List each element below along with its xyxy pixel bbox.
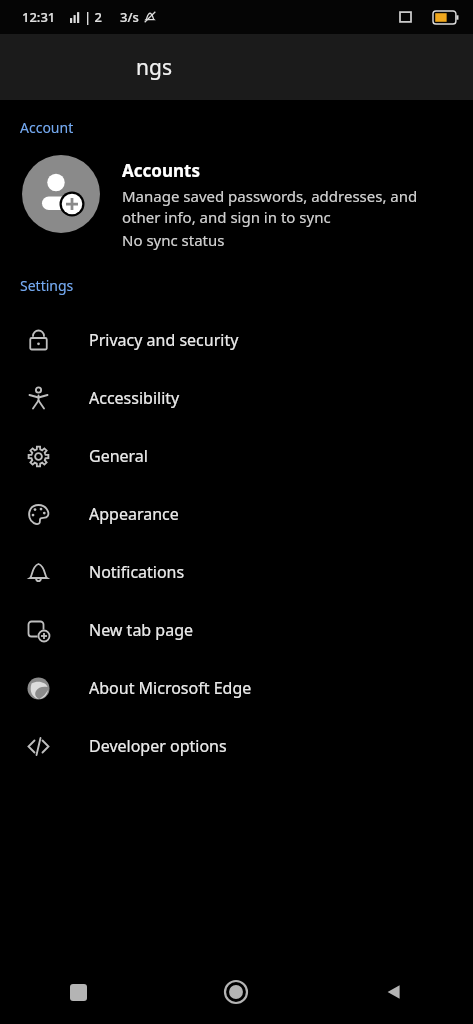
staticText: Developer options — [89, 735, 227, 757]
button[interactable]: Accessibility — [0, 369, 473, 427]
staticText: Manage saved passwords, addresses, and o… — [122, 186, 418, 228]
staticText: Accessibility — [89, 387, 180, 409]
staticText: Privacy and security — [89, 329, 239, 351]
staticText: 3/s — [120, 8, 139, 26]
staticText: About Microsoft Edge — [89, 677, 252, 699]
button[interactable]: New tab page — [0, 601, 473, 659]
button[interactable]: Notifications — [0, 543, 473, 601]
button[interactable]: Recent apps — [0, 960, 157, 1024]
staticText: Notifications — [89, 561, 185, 583]
staticText: No sync status — [122, 230, 225, 250]
button[interactable]: Back — [315, 960, 473, 1024]
button[interactable]: Developer options — [0, 717, 473, 775]
staticText: 12:31 — [22, 8, 56, 26]
button[interactable]: About Microsoft Edge — [0, 659, 473, 717]
button[interactable]: Appearance — [0, 485, 473, 543]
staticText: ngs — [136, 53, 172, 82]
staticText: Account — [20, 118, 74, 137]
staticText: Appearance — [89, 503, 179, 525]
staticText: General — [89, 445, 148, 467]
staticText: | 2 — [84, 8, 102, 26]
button[interactable]: Accounts — [0, 141, 473, 260]
button[interactable]: Privacy and security — [0, 311, 473, 369]
staticText: New tab page — [89, 619, 194, 641]
button[interactable]: Home — [157, 960, 315, 1024]
button[interactable]: General — [0, 427, 473, 485]
staticText: Settings — [20, 276, 74, 295]
staticText: Accounts — [122, 159, 200, 182]
